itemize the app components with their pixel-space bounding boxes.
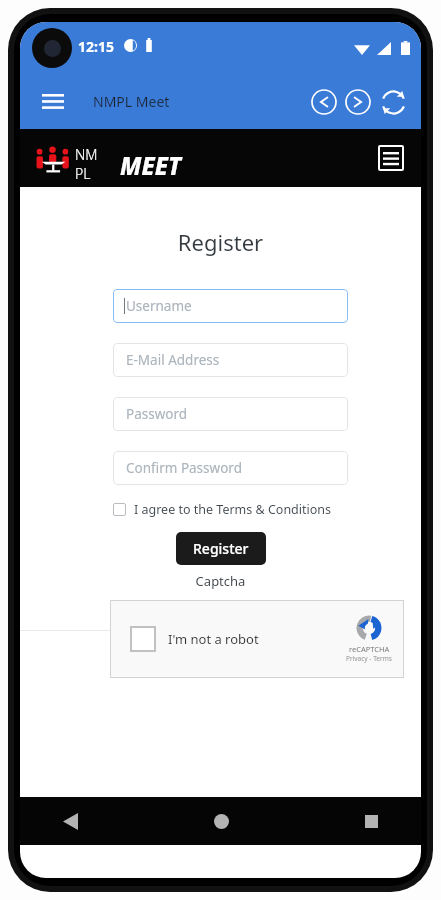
staticText: Password [126, 405, 188, 423]
staticText: 12:15 [78, 37, 114, 56]
staticText: NM [75, 145, 98, 164]
button[interactable]: Password [113, 397, 348, 431]
button[interactable]: Back [50, 801, 90, 841]
staticText: MEET [120, 149, 181, 182]
button[interactable]: Confirm Password [113, 451, 348, 485]
button[interactable]: Back [307, 85, 341, 119]
button[interactable]: I'm not a robot [110, 600, 404, 678]
staticText: I'm not a robot [168, 630, 259, 648]
staticText: NMPL Meet [93, 92, 170, 111]
staticText: Privacy - Terms [346, 654, 392, 663]
staticText: Username [126, 297, 192, 315]
button[interactable]: I agree to the Terms & Conditions [113, 501, 336, 518]
staticText: Register [193, 539, 249, 558]
staticText: Captcha [20, 572, 421, 590]
button[interactable]: E-Mail Address [113, 343, 348, 377]
button[interactable]: Register [176, 532, 266, 565]
button[interactable]: Refresh [375, 84, 411, 120]
staticText: Confirm Password [126, 459, 242, 477]
button[interactable]: Menu [38, 87, 68, 117]
staticText: I agree to the Terms & Conditions [134, 501, 332, 518]
button[interactable]: Forward [341, 85, 375, 119]
staticText: E-Mail Address [126, 351, 220, 369]
button[interactable]: Username [113, 289, 348, 323]
staticText: reCAPTCHA [349, 644, 390, 654]
button[interactable]: Site menu [378, 145, 404, 171]
button[interactable]: Home [201, 801, 241, 841]
staticText: Register [20, 227, 421, 257]
staticText: PL [75, 164, 91, 183]
button[interactable]: Recent apps [351, 801, 391, 841]
